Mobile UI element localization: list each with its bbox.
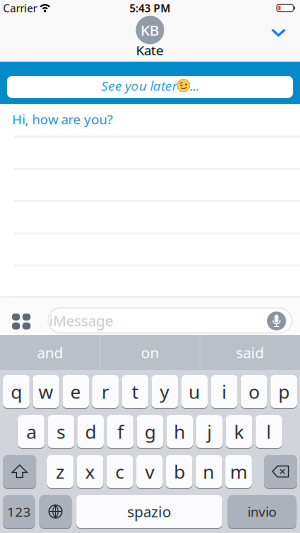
staticText: e	[70, 379, 81, 404]
button[interactable]: o	[241, 374, 267, 408]
button[interactable]: KB	[136, 16, 164, 44]
staticText: Hi, how are you?	[12, 110, 113, 128]
button[interactable]: u	[181, 374, 208, 408]
button[interactable]	[264, 454, 297, 488]
button[interactable]	[40, 494, 71, 528]
staticText: g	[144, 419, 155, 444]
button[interactable]: e	[62, 374, 89, 408]
staticText: j	[207, 419, 212, 444]
button[interactable]: c	[106, 454, 133, 488]
button[interactable]: on	[100, 335, 199, 370]
button[interactable]: x	[77, 454, 103, 488]
button[interactable]: iMessage	[48, 308, 292, 333]
staticText: u	[188, 379, 200, 404]
staticText: spazio	[127, 502, 171, 521]
button[interactable]: r	[92, 374, 119, 408]
button[interactable]: invio	[228, 494, 296, 528]
staticText: f	[117, 419, 123, 444]
staticText: and	[37, 343, 63, 362]
button[interactable]: d	[77, 414, 104, 448]
staticText: r	[101, 379, 109, 404]
button[interactable]: and	[0, 335, 99, 370]
button[interactable]	[3, 454, 36, 488]
staticText: y	[160, 379, 170, 404]
button[interactable]: See you later	[0, 62, 300, 104]
button[interactable]: m	[225, 454, 252, 488]
button[interactable]: 123	[3, 494, 35, 528]
staticText: d	[85, 419, 96, 444]
staticText: z	[56, 459, 65, 484]
staticText: 123	[7, 503, 31, 520]
staticText: n	[203, 459, 215, 484]
button[interactable]: n	[195, 454, 222, 488]
staticText: h	[174, 419, 186, 444]
button[interactable]: l	[255, 414, 282, 448]
staticText: ...	[190, 77, 199, 94]
staticText: on	[141, 343, 159, 362]
button[interactable]	[271, 28, 286, 37]
button[interactable]: a	[18, 414, 45, 448]
button[interactable]: v	[136, 454, 163, 488]
button[interactable]: t	[122, 374, 148, 408]
button[interactable]: i	[211, 374, 238, 408]
button[interactable]: k	[226, 414, 252, 448]
staticText: invio	[247, 503, 276, 520]
staticText: k	[234, 419, 244, 444]
staticText: Carrier	[3, 1, 37, 15]
staticText: x	[85, 459, 95, 484]
staticText: b	[174, 459, 185, 484]
button[interactable]: f	[107, 414, 134, 448]
button[interactable]: y	[151, 374, 178, 408]
staticText: s	[56, 419, 65, 444]
button[interactable]: s	[47, 414, 74, 448]
staticText: m	[230, 459, 247, 484]
button[interactable]: p	[270, 374, 297, 408]
staticText: iMessage	[49, 311, 113, 330]
staticText: o	[248, 379, 259, 404]
staticText: q	[11, 379, 22, 404]
staticText: Kate	[136, 41, 164, 59]
staticText: c	[115, 459, 124, 484]
staticText: w	[38, 379, 53, 404]
staticText: said	[236, 343, 264, 362]
staticText: i	[222, 379, 227, 404]
button[interactable]: said	[200, 335, 299, 370]
button[interactable]: spazio	[76, 494, 222, 528]
button[interactable]: g	[137, 414, 163, 448]
staticText: 5:43 PM	[129, 1, 170, 15]
button[interactable]: b	[166, 454, 192, 488]
staticText: t	[132, 379, 139, 404]
button[interactable]: z	[47, 454, 74, 488]
button[interactable]	[11, 312, 31, 329]
staticText: See you later	[101, 77, 177, 94]
button[interactable]: j	[196, 414, 223, 448]
staticText: a	[26, 419, 36, 444]
button[interactable]: h	[166, 414, 193, 448]
staticText: KB	[140, 20, 159, 40]
staticText: p	[278, 379, 289, 404]
staticText: v	[145, 459, 154, 484]
staticText: l	[266, 419, 271, 444]
button[interactable]: w	[33, 374, 59, 408]
button[interactable]: q	[3, 374, 30, 408]
